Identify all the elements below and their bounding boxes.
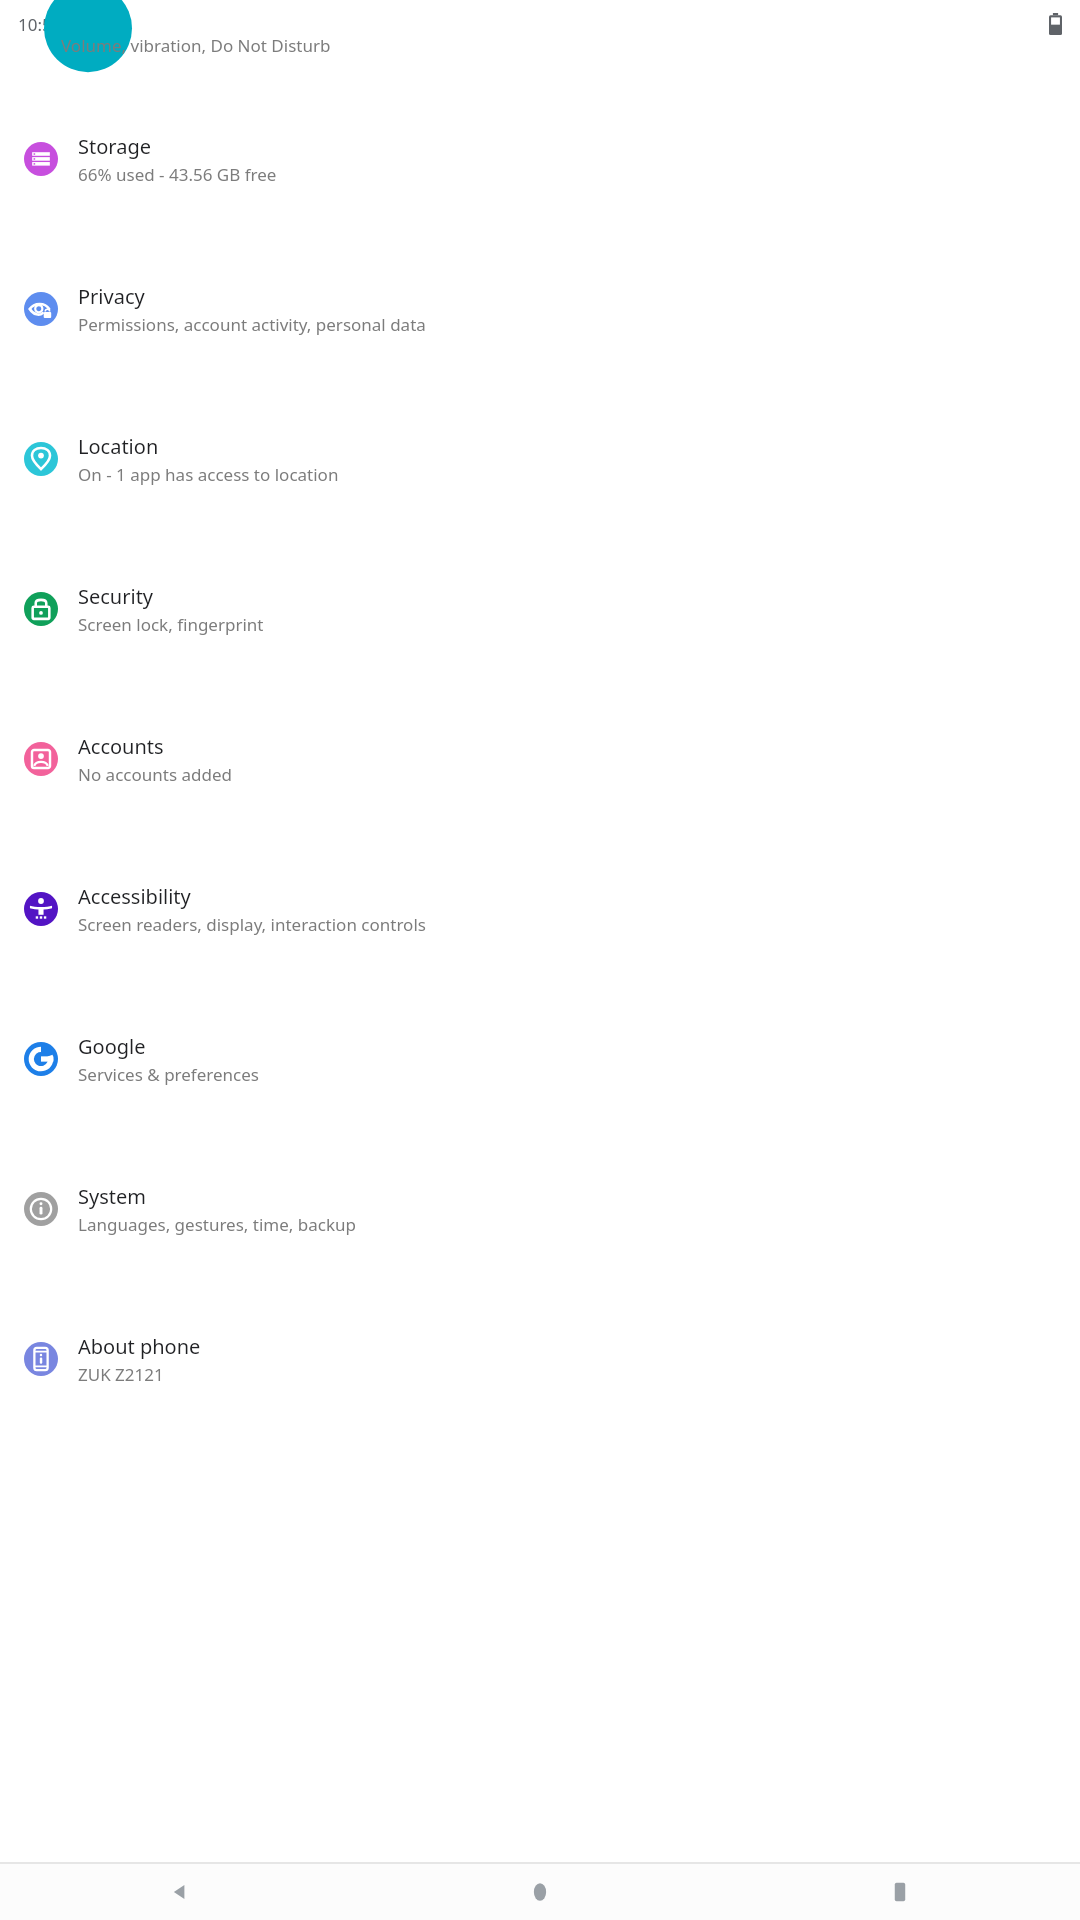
staticText: Privacy [78, 283, 145, 310]
staticText: Volume, vibration, Do Not Disturb [61, 34, 331, 57]
staticText: Location [78, 433, 159, 460]
staticText: System [78, 1183, 146, 1210]
staticText: Security [78, 583, 154, 610]
button[interactable]: Volume, vibration, Do Not Disturb [0, 48, 1080, 84]
staticText: Screen readers, display, interaction con… [78, 913, 426, 936]
button[interactable]: Google [0, 984, 1080, 1134]
button[interactable]: System [0, 1134, 1080, 1284]
staticText: About phone [78, 1333, 201, 1360]
staticText: Services & preferences [78, 1063, 259, 1086]
staticText: 10:56 [18, 13, 62, 36]
staticText: 66% used - 43.56 GB free [78, 163, 277, 186]
button[interactable]: Location [0, 384, 1080, 534]
staticText: Accounts [78, 733, 164, 760]
button[interactable]: Recent apps [720, 1864, 1080, 1920]
button[interactable]: Home [360, 1864, 720, 1920]
button[interactable]: Back [0, 1864, 360, 1920]
staticText: Screen lock, fingerprint [78, 613, 264, 636]
staticText: Languages, gestures, time, backup [78, 1213, 357, 1236]
button[interactable]: Security [0, 534, 1080, 684]
staticText: Google [78, 1033, 146, 1060]
staticText: No accounts added [78, 763, 232, 786]
staticText: Storage [78, 133, 151, 160]
button[interactable]: Accessibility [0, 834, 1080, 984]
staticText: On - 1 app has access to location [78, 463, 339, 486]
button[interactable]: Storage [0, 84, 1080, 234]
button[interactable]: About phone [0, 1284, 1080, 1434]
button[interactable]: Privacy [0, 234, 1080, 384]
button[interactable]: Accounts [0, 684, 1080, 834]
staticText: ZUK Z2121 [78, 1363, 164, 1386]
staticText: Accessibility [78, 883, 191, 910]
staticText: Permissions, account activity, personal … [78, 313, 426, 336]
